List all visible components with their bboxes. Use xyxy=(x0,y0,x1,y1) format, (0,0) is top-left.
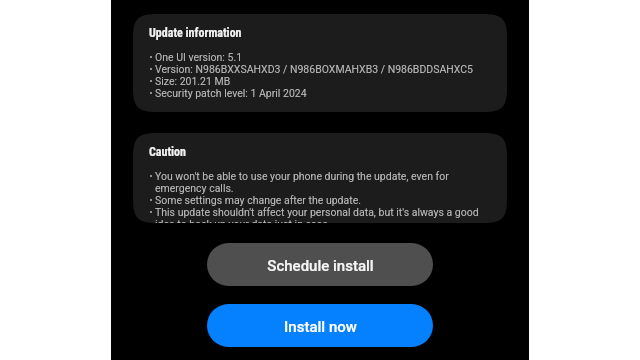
staticText: Caution xyxy=(149,145,186,159)
button[interactable]: Update information xyxy=(133,14,507,112)
staticText: Schedule install xyxy=(267,257,374,275)
button[interactable]: Install now xyxy=(207,304,433,347)
staticText: This update shouldn't affect your person… xyxy=(155,206,497,223)
staticText: Some settings may change after the updat… xyxy=(155,194,362,206)
staticText: You won't be able to use your phone duri… xyxy=(155,170,497,194)
staticText: One UI version: 5.1 xyxy=(155,51,243,63)
staticText: Install now xyxy=(284,318,357,336)
staticText: Update information xyxy=(149,26,242,40)
button[interactable]: Schedule install xyxy=(207,243,433,286)
staticText: Security patch level: 1 April 2024 xyxy=(155,87,307,99)
staticText: Size: 201.21 MB xyxy=(155,75,231,87)
staticText: Version: N986BXXSAHXD3 / N986BOXMAHXB3 /… xyxy=(155,63,474,75)
button[interactable]: Caution xyxy=(133,133,507,223)
